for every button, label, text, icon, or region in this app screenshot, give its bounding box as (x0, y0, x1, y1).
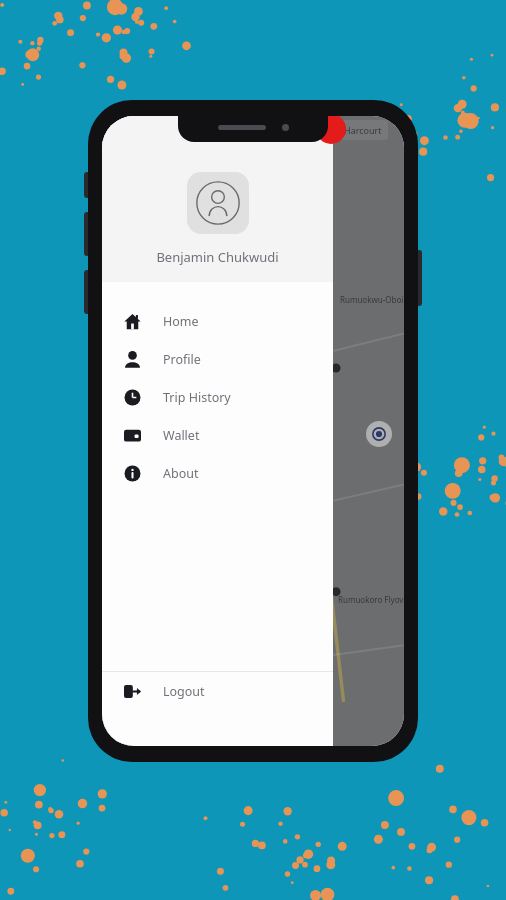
staticText: Benjamin Chukwudi (156, 248, 279, 266)
staticText: Profile (163, 351, 201, 368)
staticText: Wallet (163, 427, 200, 444)
button[interactable]: My location (366, 421, 392, 447)
staticText: Rumuokoro Flyover (338, 594, 404, 605)
button[interactable]: Close drawer (316, 116, 346, 144)
button[interactable]: About (102, 454, 333, 492)
staticText: Home (163, 313, 199, 330)
button[interactable]: Trip History (102, 378, 333, 416)
button[interactable]: Home (102, 302, 333, 340)
staticText: Trip History (163, 389, 231, 406)
staticText: Rumuokwu-Oboi (340, 294, 404, 305)
staticText: Logout (163, 683, 205, 700)
button[interactable]: Wallet (102, 416, 333, 454)
staticText: Harcourt (344, 124, 382, 136)
button[interactable]: Profile (102, 340, 333, 378)
staticText: About (163, 465, 199, 482)
button[interactable]: Logout (102, 672, 333, 710)
